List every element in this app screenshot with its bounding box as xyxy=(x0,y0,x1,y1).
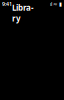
staticText: Library xyxy=(12,2,34,24)
staticText: 9:41 xyxy=(2,0,12,8)
staticText: ıl ≈ ▮ xyxy=(50,0,62,8)
